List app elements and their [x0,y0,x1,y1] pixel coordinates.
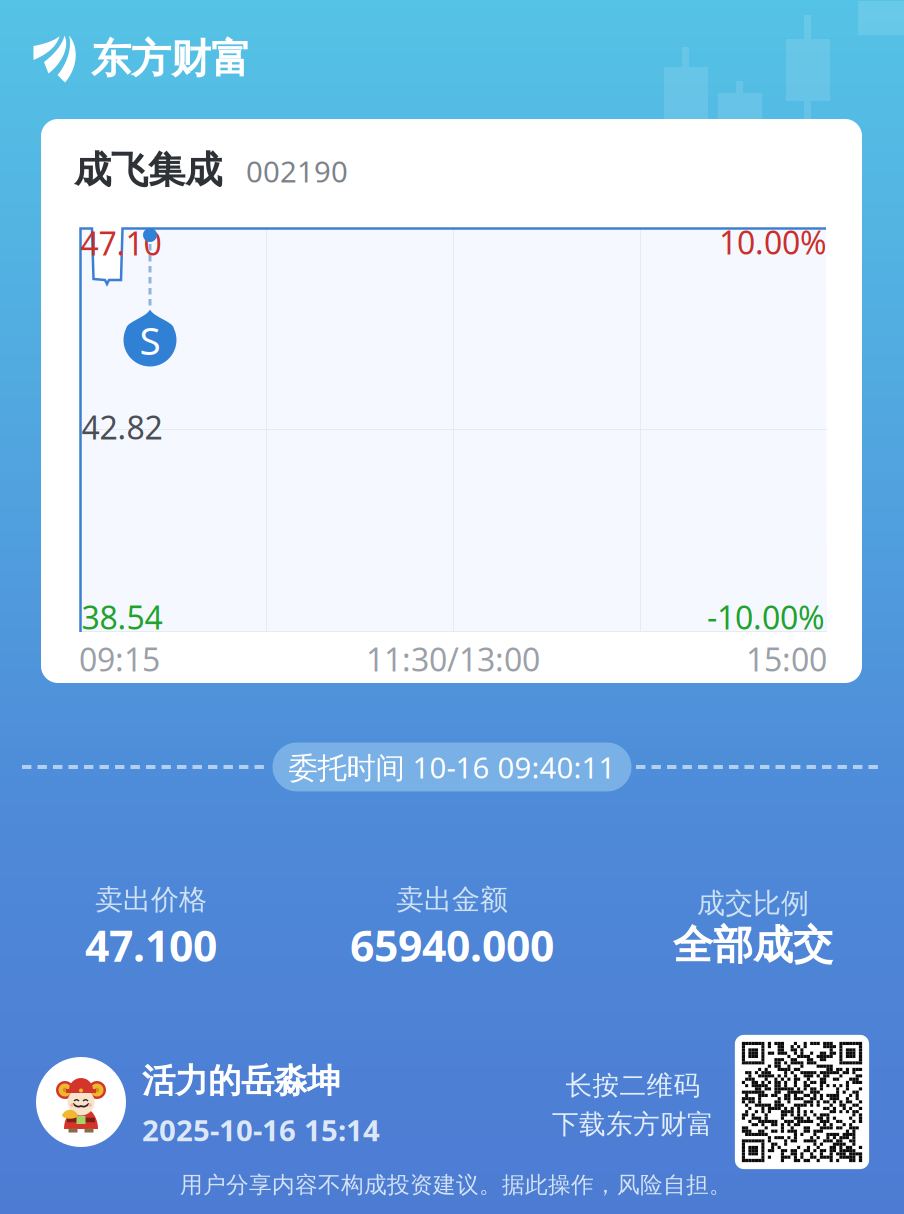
staticText: 全部成交 [673,921,833,970]
staticText: -10.00% [707,596,825,638]
staticText: 用户分享内容不构成投资建议。据此操作，风险自担。 [180,1171,732,1199]
button[interactable]: 长按二维码 [552,1069,714,1141]
staticText: 成交比例 [697,886,809,921]
staticText: 65940.000 [350,917,554,974]
staticText: 09:15 [79,638,160,680]
staticText: 11:30/13:00 [366,638,540,680]
staticText: 38.54 [81,596,162,638]
staticText: 委托时间 10-16 09:40:11 [288,747,615,786]
button[interactable]: 东方财富 [33,34,251,83]
staticText: 002190 [246,152,348,191]
staticText: 成飞集成 [74,147,222,193]
staticText: 卖出价格 [95,882,207,917]
staticText: 东方财富 [91,34,251,83]
staticText: 长按二维码 [565,1069,700,1102]
staticText: 42.82 [81,406,162,448]
staticText: 10.00% [719,221,827,263]
staticText: S [139,314,160,366]
staticText: 47.100 [85,917,217,974]
staticText: 15:00 [746,638,827,680]
staticText: 活力的岳淼坤 [142,1061,340,1101]
staticText: 2025-10-16 15:14 [142,1110,380,1149]
staticText: 下载东方财富 [552,1108,714,1141]
staticText: 47.10 [80,222,161,264]
staticText: 卖出金额 [396,882,508,917]
